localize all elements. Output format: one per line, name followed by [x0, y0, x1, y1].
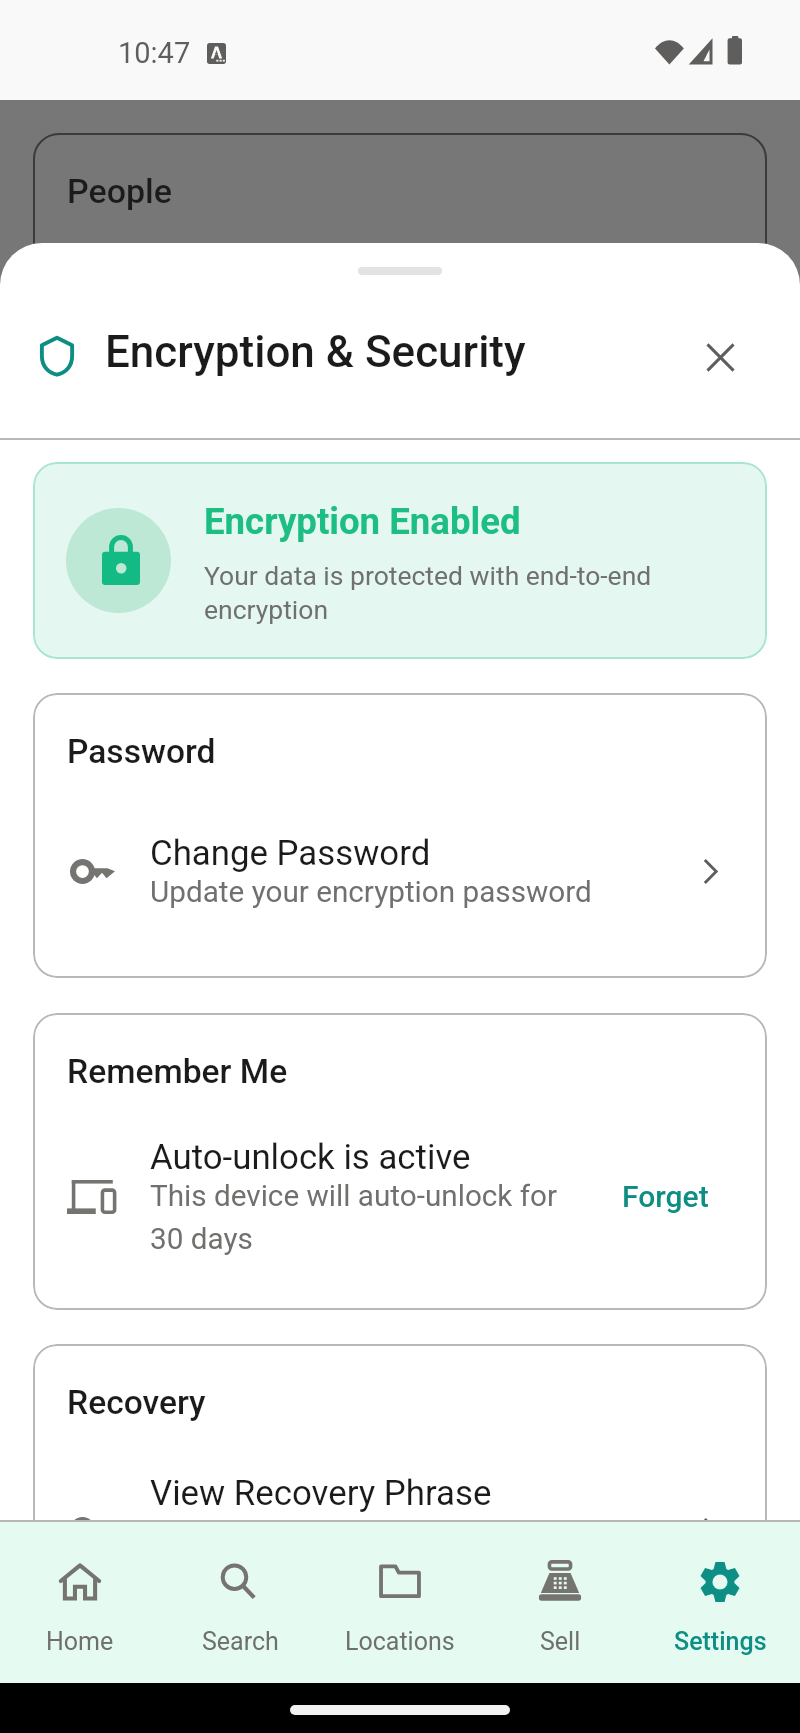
button[interactable]: Settings	[640, 1522, 800, 1683]
button[interactable]: Search	[160, 1522, 320, 1683]
staticText: Settings	[674, 1627, 767, 1656]
button[interactable]: Sell	[480, 1522, 640, 1683]
button[interactable]: Open	[690, 851, 730, 891]
button[interactable]: View Recovery Phrase	[33, 1422, 767, 1592]
button[interactable]: Encryption Enabled	[33, 462, 767, 659]
staticText: Locations	[345, 1627, 455, 1656]
button[interactable]: Open	[690, 1510, 730, 1550]
staticText: Encryption Enabled	[204, 500, 521, 543]
staticText: Encryption & Security	[105, 326, 526, 378]
button[interactable]: Change Password	[33, 771, 767, 909]
staticText: Remember Me	[67, 1052, 288, 1091]
staticText: Search	[202, 1627, 279, 1656]
staticText: People	[67, 171, 172, 211]
staticText: 10:47	[118, 36, 191, 70]
staticText: Recovery	[67, 1383, 206, 1422]
staticText: See your 12-word recovery phrase to rest…	[150, 1514, 570, 1592]
staticText: Change Password	[150, 833, 431, 874]
staticText: Password	[67, 732, 216, 771]
button[interactable]: Auto-unlock is active	[33, 1091, 767, 1256]
button[interactable]: Locations	[320, 1522, 480, 1683]
button[interactable]: Forget	[618, 1173, 730, 1220]
button[interactable]: Home	[0, 1522, 160, 1683]
staticText: Sell	[540, 1627, 581, 1656]
staticText: View Recovery Phrase	[150, 1473, 492, 1514]
button[interactable]: Close	[692, 321, 754, 383]
staticText: This device will auto-unlock for 30 days	[150, 1178, 570, 1256]
staticText: Auto-unlock is active	[150, 1137, 471, 1178]
staticText: Your data is protected with end-to-end e…	[204, 560, 735, 625]
staticText: Update your encryption password	[150, 874, 592, 909]
staticText: Home	[46, 1627, 114, 1656]
